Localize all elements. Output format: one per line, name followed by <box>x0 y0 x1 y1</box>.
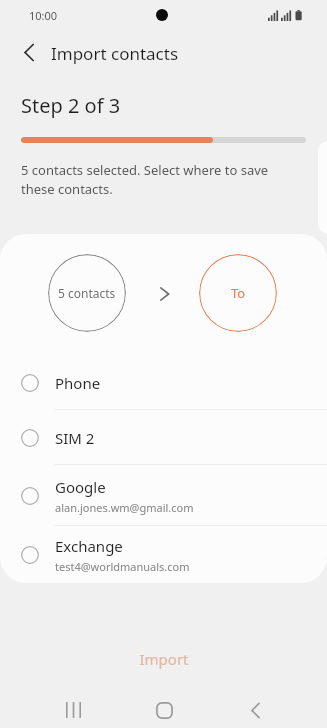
button[interactable]: Exchange <box>0 526 327 583</box>
staticText: Step 2 of 3 <box>21 92 121 119</box>
staticText: Google <box>55 477 106 497</box>
staticText: Import <box>139 649 189 669</box>
staticText: Import contacts <box>51 42 179 65</box>
staticText: 5 contacts <box>58 285 116 301</box>
staticText: 10:00 <box>29 8 58 23</box>
staticText: test4@worldmanuals.com <box>55 559 190 574</box>
button[interactable]: To <box>199 254 277 332</box>
button[interactable]: SIM 2 <box>0 410 327 465</box>
button[interactable]: Back <box>235 690 275 728</box>
button[interactable]: Import <box>0 636 327 682</box>
staticText: SIM 2 <box>55 428 95 448</box>
button[interactable]: Recent apps <box>53 690 93 728</box>
staticText: To <box>231 284 246 302</box>
button[interactable]: Back <box>12 35 46 69</box>
staticText: alan.jones.wm@gmail.com <box>55 500 194 515</box>
button[interactable]: Phone <box>0 355 327 410</box>
button[interactable]: Home <box>144 690 184 728</box>
button[interactable]: Google <box>0 465 327 526</box>
staticText: Phone <box>55 373 101 393</box>
staticText: Exchange <box>55 536 123 556</box>
button[interactable]: 5 contacts <box>48 254 126 332</box>
staticText: 5 contacts selected. Select where to sav… <box>21 161 269 198</box>
